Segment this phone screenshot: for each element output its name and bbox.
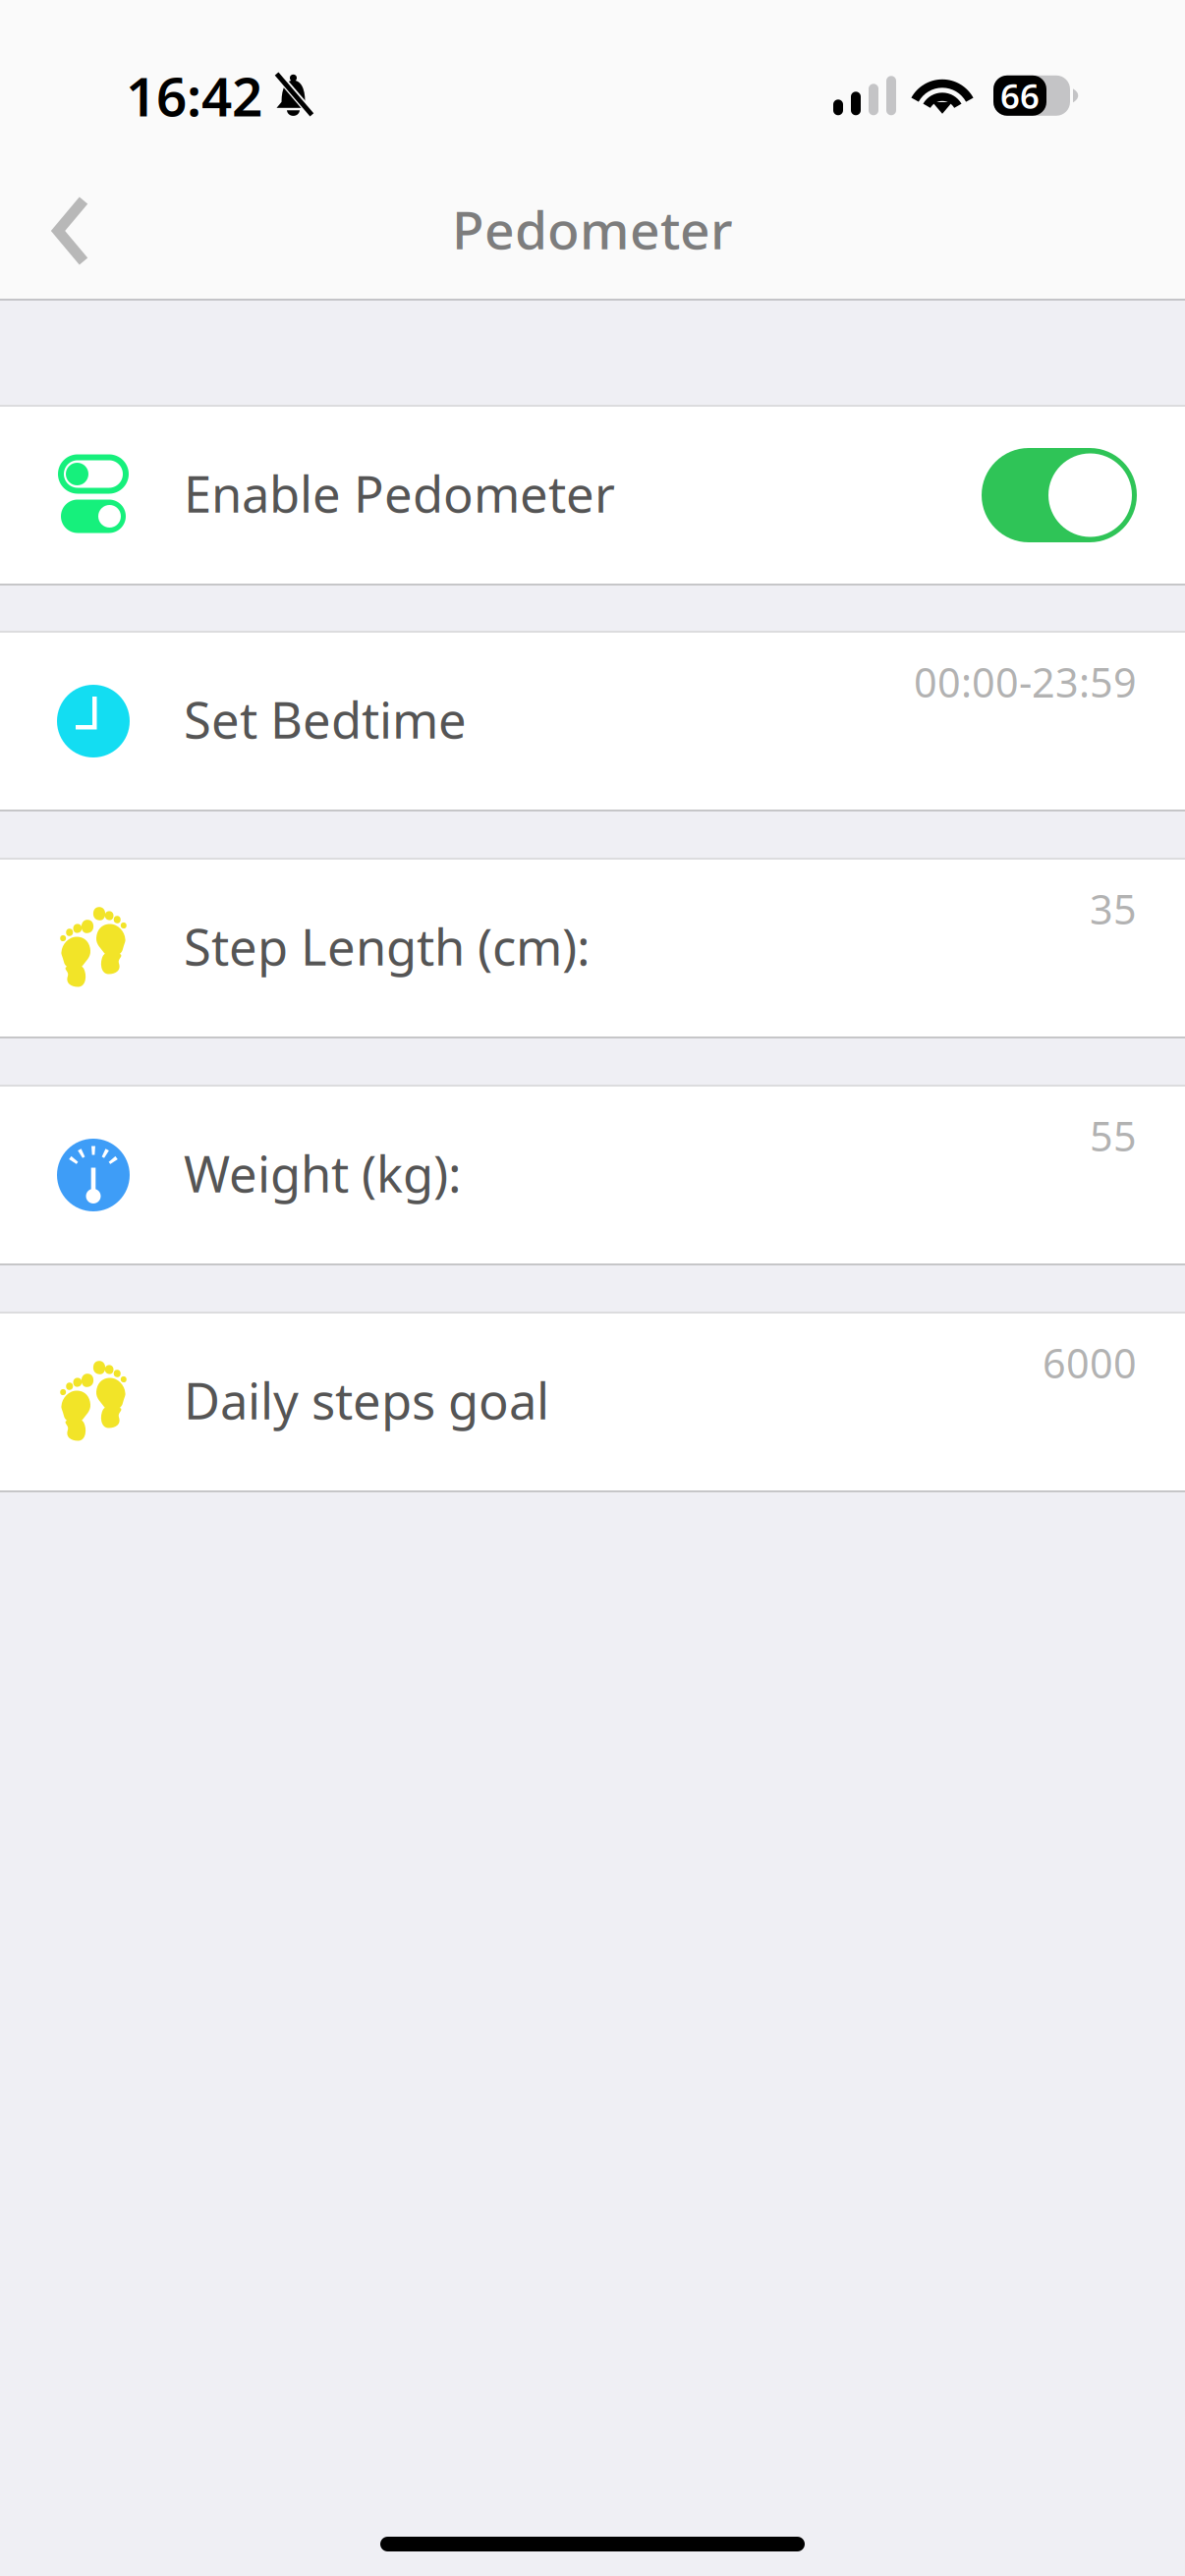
staticText: 66	[1000, 73, 1040, 118]
staticText: 00:00-23:59	[914, 655, 1137, 709]
button[interactable]: Set Bedtime	[0, 631, 1185, 812]
staticText: Daily steps goal	[184, 1367, 549, 1433]
staticText: 55	[1090, 1109, 1137, 1163]
staticText: Enable Pedometer	[184, 460, 615, 526]
staticText: 35	[1090, 882, 1137, 936]
staticText: Step Length (cm):	[184, 913, 591, 979]
staticText: Pedometer	[452, 194, 733, 264]
staticText: 6000	[1043, 1336, 1137, 1390]
staticText: 16:42	[126, 60, 262, 131]
button[interactable]: Daily steps goal	[0, 1312, 1185, 1492]
staticText: Set Bedtime	[184, 686, 467, 752]
button[interactable]: Step Length (cm):	[0, 858, 1185, 1038]
button[interactable]: Weight (kg):	[0, 1085, 1185, 1265]
staticText: Weight (kg):	[184, 1140, 462, 1206]
button[interactable]: Back	[0, 155, 126, 291]
button[interactable]: Enable Pedometer	[0, 405, 1185, 586]
